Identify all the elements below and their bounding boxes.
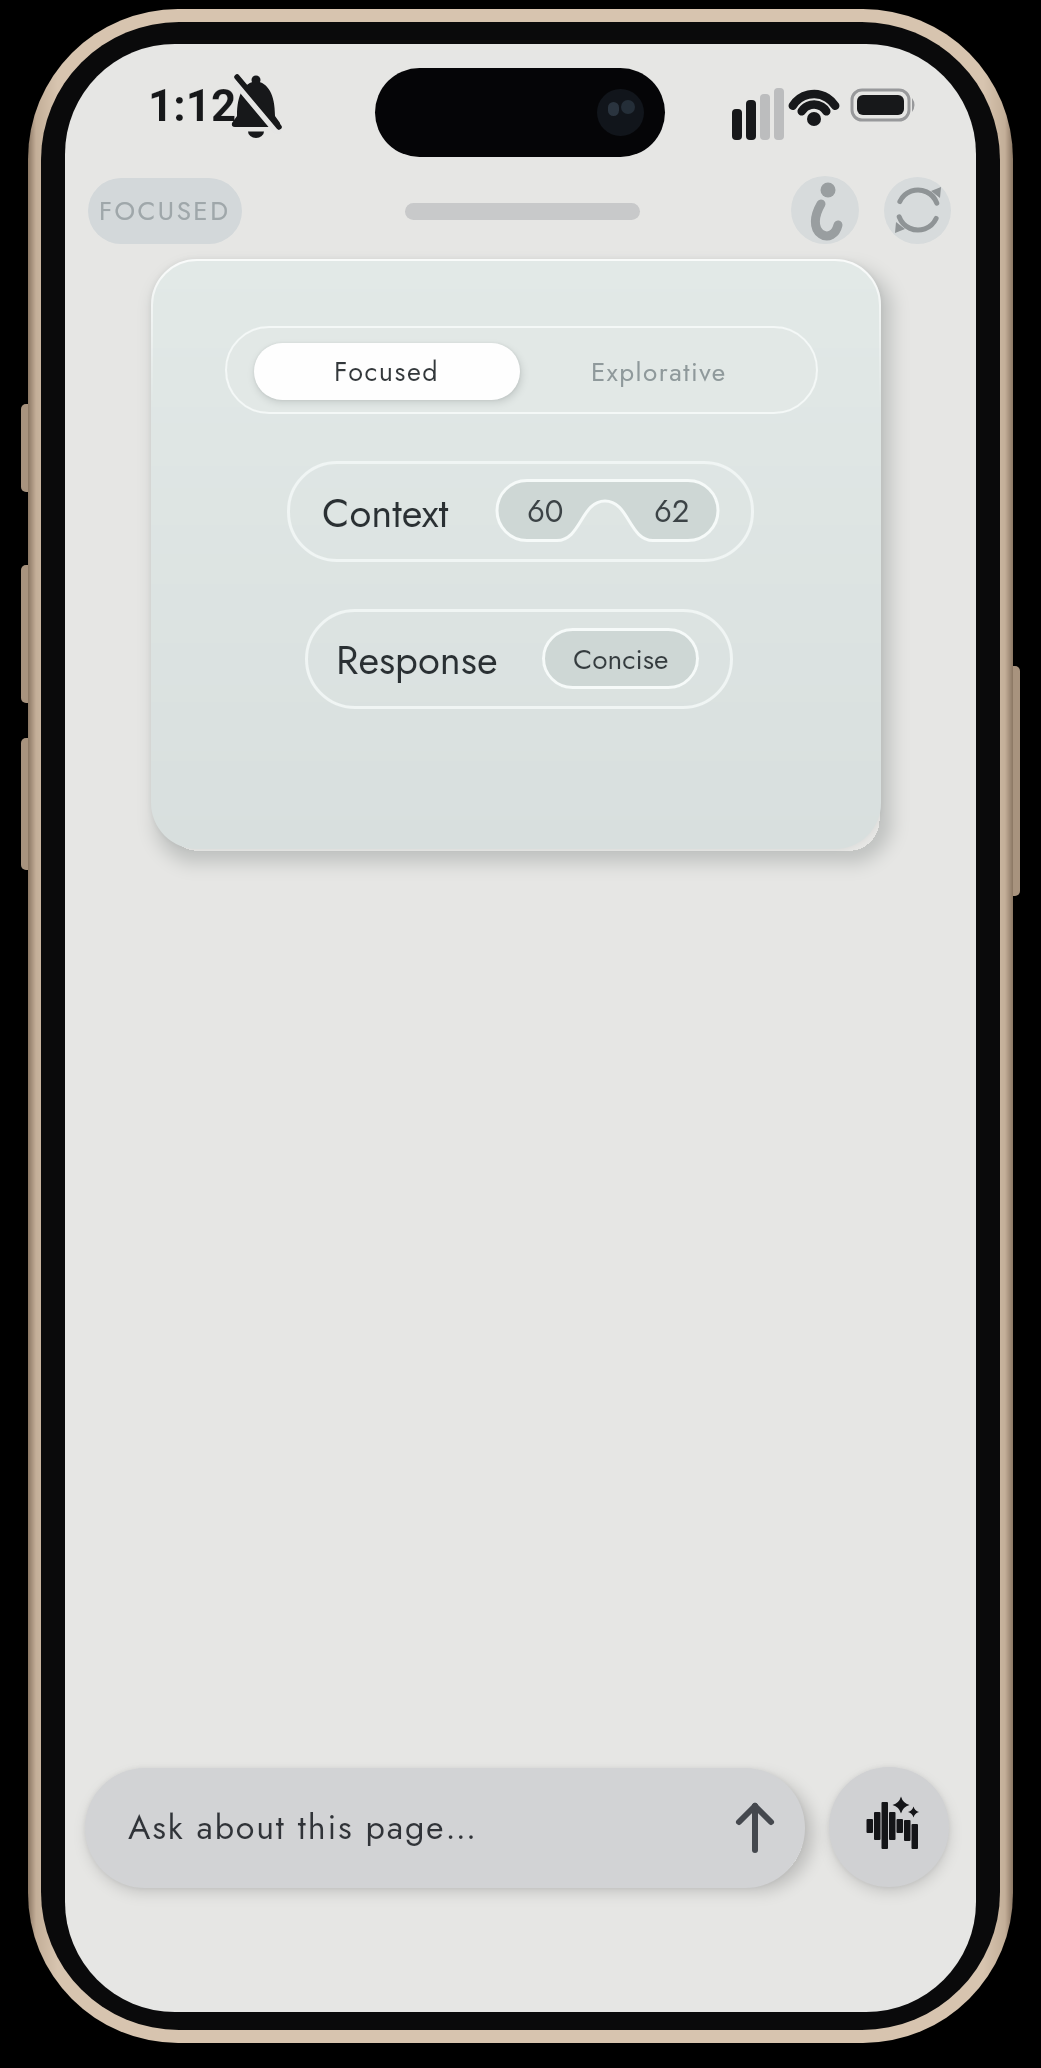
staticText: Concise	[573, 639, 669, 679]
staticText: Ask about this page…	[128, 1803, 478, 1852]
staticText: 62	[654, 489, 690, 534]
staticText: 1:12	[148, 80, 237, 132]
staticText: Response	[336, 631, 498, 687]
staticText: FOCUSED	[99, 192, 231, 230]
staticText: Focused	[334, 352, 440, 391]
staticText: Explorative	[591, 353, 727, 391]
staticText: 60	[527, 489, 564, 534]
staticText: Context	[322, 484, 449, 542]
